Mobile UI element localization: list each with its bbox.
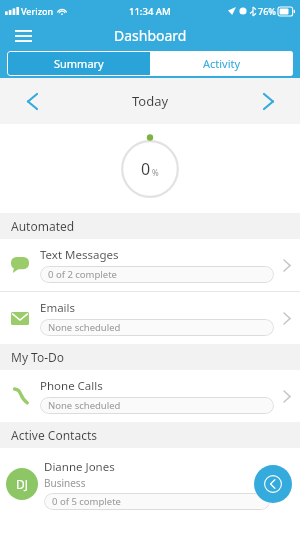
staticText: Verizon [21,5,54,17]
staticText: Text Messages [40,247,119,263]
staticText: 11:34 AM [129,5,171,18]
button[interactable]: Collapse [254,465,292,503]
staticText: Automated [11,218,75,234]
button[interactable]: Previous day [18,87,46,115]
staticText: Activity [203,56,241,71]
staticText: Summary [54,56,104,71]
staticText: Today [132,92,169,110]
staticText: DJ [16,476,29,492]
staticText: Business [44,476,86,490]
staticText: Active Contacts [11,427,98,443]
button[interactable]: Text Messages [0,239,300,291]
button[interactable]: Summary [7,51,150,76]
staticText: Phone Calls [40,378,103,394]
staticText: 0 of 2 complete [48,268,117,281]
staticText: Dianne Jones [44,459,115,475]
button[interactable]: Menu [8,22,38,49]
staticText: None scheduled [48,321,121,334]
button[interactable]: DJ [0,448,300,520]
button[interactable]: Phone Calls [0,370,300,422]
staticText: 0 of 5 complete [52,495,121,508]
staticText: 0 [141,158,151,180]
staticText: 76% [258,5,276,17]
staticText: % [152,167,159,178]
staticText: Emails [40,300,76,316]
staticText: Dashboard [114,26,187,45]
button[interactable]: Emails [0,292,300,344]
button[interactable]: Activity [150,51,293,76]
staticText: My To-Do [11,349,65,365]
button[interactable]: Next day [254,87,282,115]
staticText: None scheduled [48,399,121,412]
